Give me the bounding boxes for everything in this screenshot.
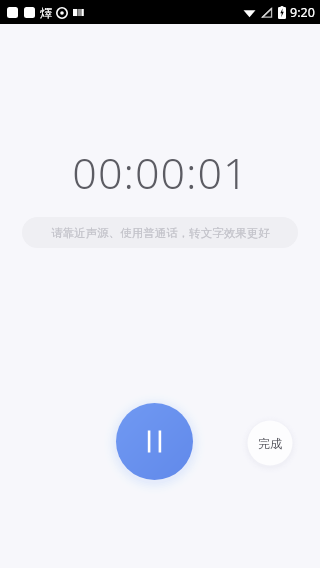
staticText: 9:20 (290, 4, 315, 21)
staticText: 00:00:01 (72, 143, 249, 202)
button[interactable]: Pause recording (116, 403, 193, 480)
button[interactable]: 请靠近声源、使用普通话，转文字效果更好 (22, 217, 298, 248)
staticText: 燡 (40, 5, 52, 20)
button[interactable]: 完成 (246, 419, 294, 467)
staticText: 请靠近声源、使用普通话，转文字效果更好 (51, 226, 270, 240)
staticText: 完成 (258, 436, 282, 451)
